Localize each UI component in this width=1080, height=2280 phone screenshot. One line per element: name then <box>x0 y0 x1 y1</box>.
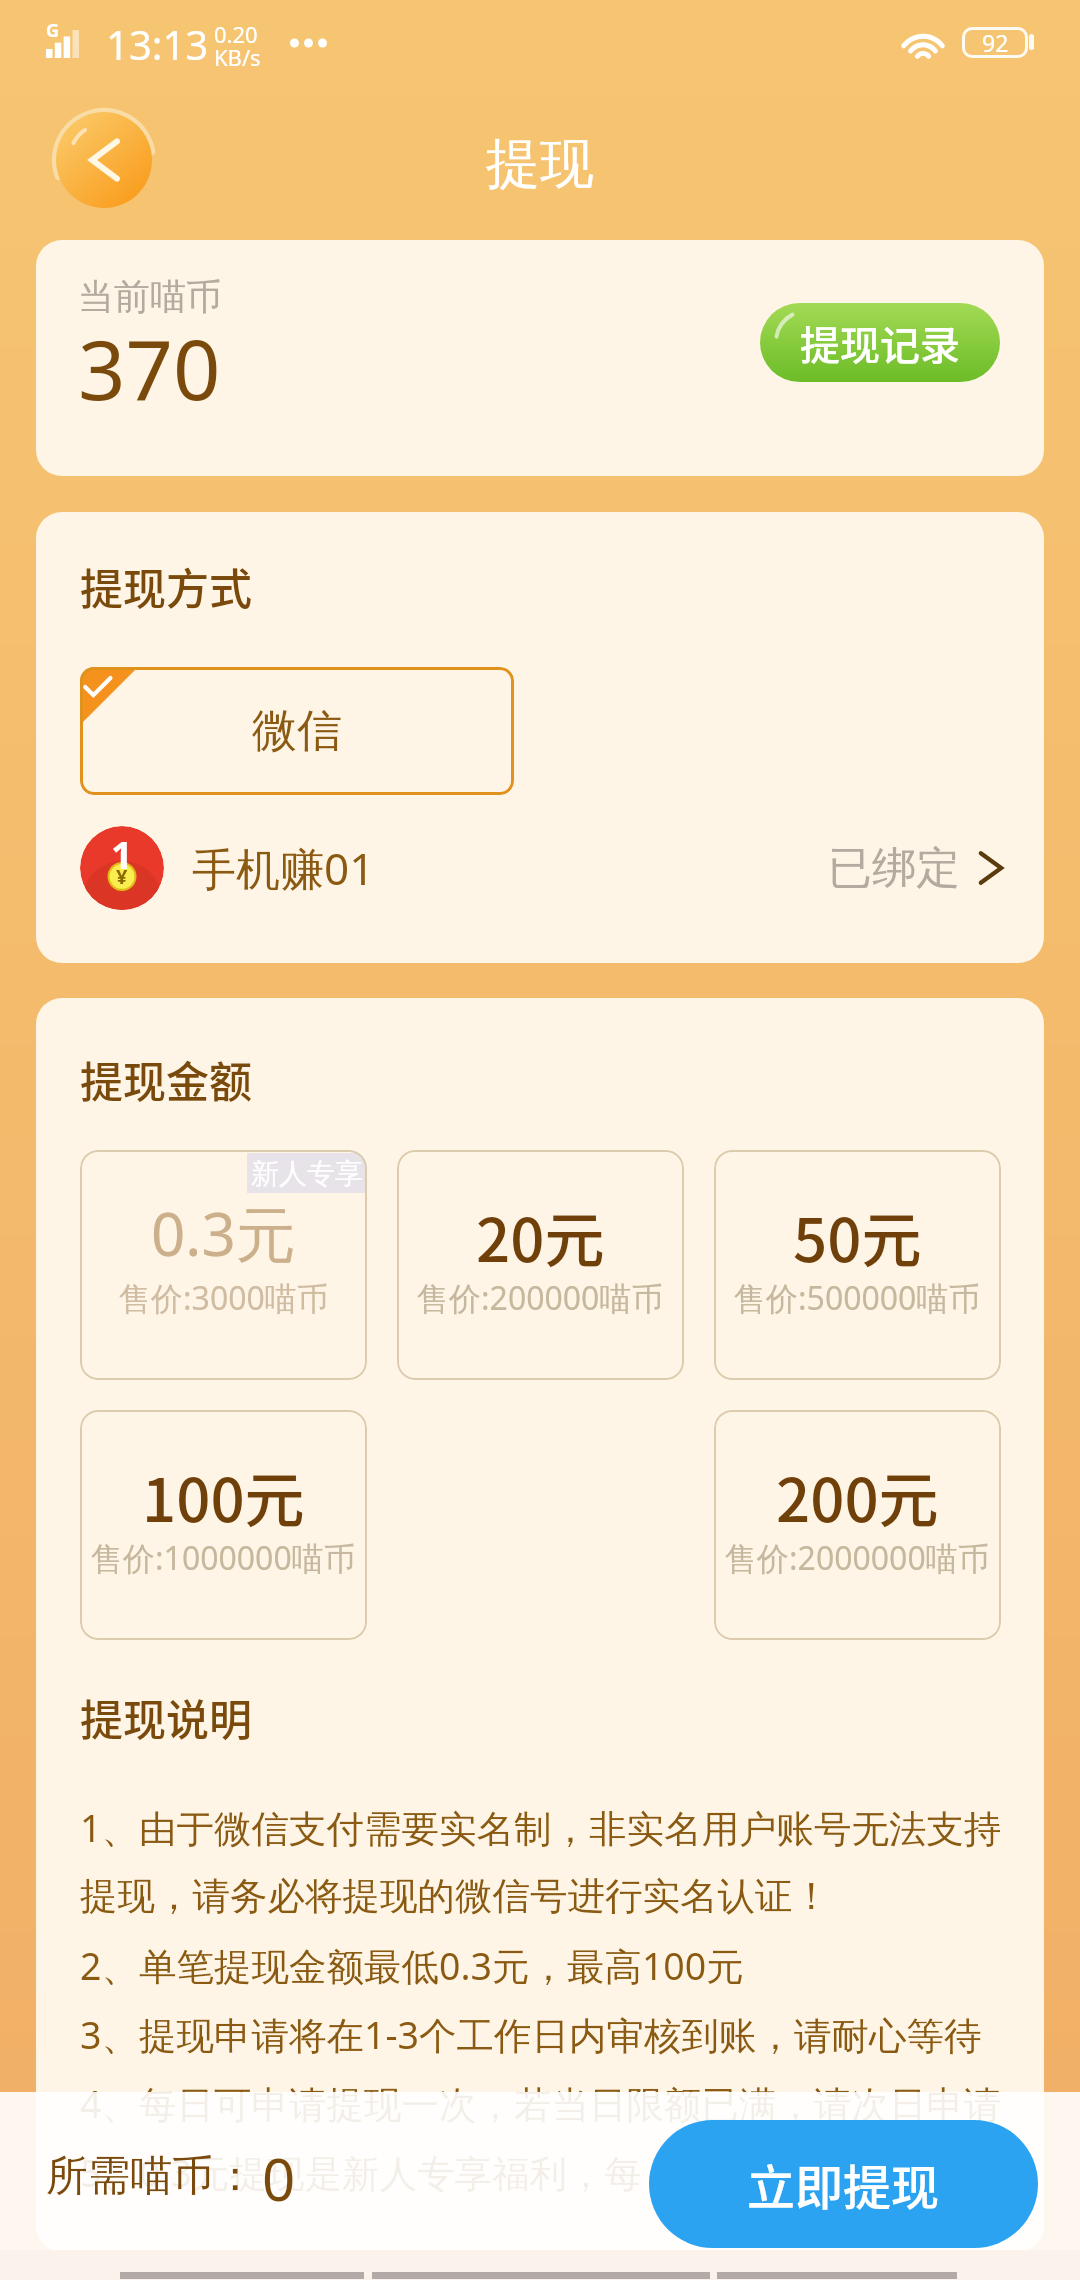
staticText: 提现 <box>486 130 594 198</box>
button[interactable]: 100元 <box>80 1410 367 1640</box>
staticText: 1 <box>111 828 133 880</box>
staticText: 提现方式 <box>80 555 252 617</box>
staticText: 手机赚01 <box>192 838 375 898</box>
staticText: 提现记录 <box>800 314 960 372</box>
button[interactable]: Back <box>56 112 152 208</box>
staticText: 50元 <box>793 1192 922 1279</box>
button[interactable]: 0.3元 <box>80 1150 367 1380</box>
staticText: 新人专享 <box>251 1156 363 1191</box>
staticText: 当前喵币 <box>78 274 222 319</box>
staticText: 4、每日可申请提现一次，若当日限额已满，请次日申请 <box>80 2078 1002 2129</box>
staticText: 2、单笔提现金额最低0.3元，最高100元 <box>80 1940 744 1991</box>
staticText: 提现，请务必将提现的微信号进行实名认证！ <box>80 1873 830 1920</box>
staticText: 0 <box>262 2139 296 2218</box>
staticText: 0.20 <box>214 19 258 49</box>
staticText: 20元 <box>476 1192 605 1279</box>
button[interactable]: 50元 <box>714 1150 1001 1380</box>
staticText: 200元 <box>776 1452 939 1539</box>
button[interactable]: 1 <box>80 813 1008 923</box>
button[interactable]: 提现记录 <box>760 303 1000 382</box>
staticText: 提现金额 <box>80 1048 252 1110</box>
staticText: ¥ <box>116 863 128 890</box>
staticText: 0.3元 <box>151 1192 296 1274</box>
staticText: 售价:200000喵币 <box>417 1276 664 1320</box>
staticText: 13:13 <box>106 17 209 71</box>
staticText: 提现说明 <box>80 1686 252 1748</box>
staticText: 售价:3000喵币 <box>119 1276 329 1320</box>
staticText: 售价:2000000喵币 <box>725 1536 990 1580</box>
staticText: 5、0.3元提现是新人专享福利，每 <box>80 2147 642 2198</box>
staticText: 100元 <box>142 1452 305 1539</box>
button[interactable]: 立即提现 <box>649 2120 1038 2248</box>
button[interactable]: 微信 <box>80 667 514 795</box>
staticText: 370 <box>78 311 221 424</box>
staticText: 售价:1000000喵币 <box>91 1536 356 1580</box>
staticText: 所需喵币： <box>46 2150 256 2203</box>
staticText: 1、由于微信支付需要实名制，非实名用户账号无法支持 <box>80 1802 1002 1853</box>
staticText: KB/s <box>214 42 261 72</box>
button[interactable]: 20元 <box>397 1150 684 1380</box>
staticText: 立即提现 <box>747 2149 940 2219</box>
button[interactable]: 200元 <box>714 1410 1001 1640</box>
staticText: G <box>46 18 60 43</box>
staticText: 3、提现申请将在1-3个工作日内审核到账，请耐心等待 <box>80 2009 982 2060</box>
staticText: 售价:500000喵币 <box>734 1276 981 1320</box>
staticText: 微信 <box>252 703 342 760</box>
staticText: 92 <box>982 27 1009 58</box>
staticText: 已绑定 <box>828 841 960 896</box>
